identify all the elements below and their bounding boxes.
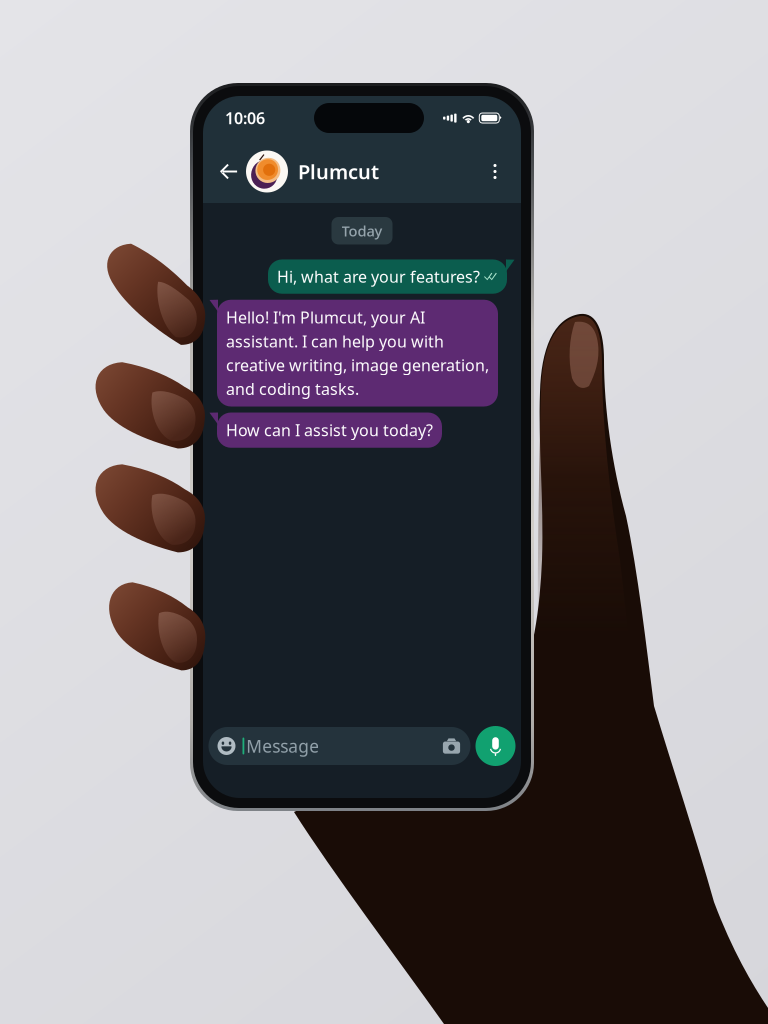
staticText: Message bbox=[246, 734, 319, 757]
button[interactable]: Record voice message bbox=[475, 726, 515, 766]
staticText: How can I assist you today? bbox=[226, 419, 433, 441]
staticText: Plumcut bbox=[298, 158, 379, 185]
staticText: Hello! I'm Plumcut, your AI assistant. I… bbox=[226, 307, 489, 399]
button[interactable]: Back bbox=[212, 148, 246, 194]
button[interactable]: Plumcut bbox=[246, 148, 379, 194]
button[interactable]: Camera bbox=[442, 737, 460, 754]
staticText: Today bbox=[341, 221, 382, 240]
staticText: 10:06 bbox=[225, 107, 265, 129]
staticText: Hi, what are your features? bbox=[277, 266, 480, 287]
button[interactable]: Emoji bbox=[217, 737, 235, 755]
button[interactable]: More options bbox=[480, 148, 510, 194]
